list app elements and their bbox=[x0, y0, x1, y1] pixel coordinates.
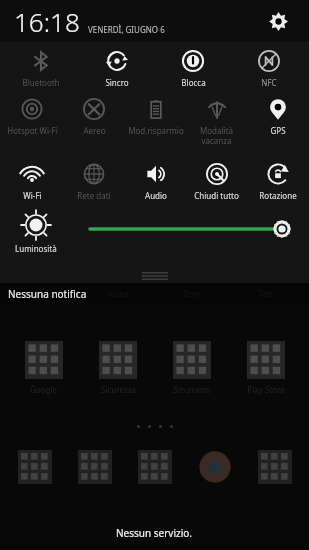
staticText: Chiudi tutto bbox=[194, 190, 239, 201]
button[interactable]: Sicurezza bbox=[81, 341, 155, 395]
button[interactable]: Blocca bbox=[155, 43, 231, 90]
staticText: Sincro bbox=[105, 77, 129, 88]
staticText: Musica bbox=[30, 288, 57, 299]
staticText: Rete dati bbox=[77, 190, 111, 201]
staticText: Rotazione bbox=[259, 190, 297, 201]
button[interactable]: Strumenti bbox=[155, 341, 229, 395]
staticText: Modalità vacanza bbox=[186, 125, 247, 146]
button[interactable]: App 4 bbox=[245, 450, 305, 484]
staticText: Wi-Fi bbox=[23, 190, 42, 201]
button[interactable]: Modalità vacanza bbox=[186, 91, 247, 148]
button[interactable]: Mod.risparmio bbox=[125, 91, 186, 138]
staticText: Play Store bbox=[247, 384, 285, 395]
staticText: Sicurezza bbox=[101, 384, 136, 395]
button[interactable]: App 2 bbox=[125, 450, 185, 484]
button[interactable]: Rete dati bbox=[63, 156, 125, 203]
button[interactable]: Settings bbox=[265, 8, 291, 34]
staticText: 16:18 bbox=[14, 4, 80, 39]
staticText: Video bbox=[107, 288, 129, 299]
button[interactable]: Bluetooth bbox=[2, 43, 79, 90]
staticText: Luminosità bbox=[15, 243, 57, 254]
button[interactable]: Aereo bbox=[63, 91, 125, 138]
button[interactable]: Wi-Fi bbox=[1, 156, 63, 203]
button[interactable]: Brightness slider bbox=[72, 215, 309, 251]
button[interactable]: Google bbox=[6, 341, 81, 395]
button[interactable]: Brightness bbox=[0, 212, 72, 254]
button[interactable]: App 1 bbox=[65, 450, 125, 484]
staticText: Google bbox=[30, 384, 57, 395]
button[interactable]: GPS bbox=[247, 91, 308, 138]
staticText: Strumenti bbox=[173, 384, 211, 395]
staticText: Test bbox=[258, 288, 274, 299]
button[interactable]: App 0 bbox=[4, 450, 65, 484]
button[interactable]: Play Store bbox=[229, 341, 303, 395]
staticText: VENERDÌ, GIUGNO 6 bbox=[88, 24, 165, 35]
staticText: NFC bbox=[261, 77, 277, 88]
staticText: GPS bbox=[270, 125, 286, 136]
staticText: Blocca bbox=[181, 77, 206, 88]
staticText: Bluetooth bbox=[22, 77, 60, 88]
button[interactable]: Audio bbox=[125, 156, 186, 203]
button[interactable]: App 3 bbox=[185, 450, 245, 484]
button[interactable]: NFC bbox=[231, 43, 307, 90]
staticText: Nessun servizio. bbox=[116, 526, 193, 540]
staticText: Nessuna notifica bbox=[8, 287, 87, 301]
button[interactable]: Drag handle bbox=[0, 269, 309, 283]
button[interactable]: Rotazione bbox=[247, 156, 308, 203]
button[interactable]: Sincro bbox=[79, 43, 155, 90]
staticText: Mod.risparmio bbox=[128, 125, 184, 136]
staticText: Temi bbox=[183, 288, 201, 299]
staticText: Hotspot Wi-Fi bbox=[7, 125, 58, 136]
staticText: Audio bbox=[145, 190, 167, 201]
staticText: Aereo bbox=[83, 125, 106, 136]
button[interactable]: Chiudi tutto bbox=[186, 156, 247, 203]
button[interactable]: Hotspot Wi-Fi bbox=[1, 91, 63, 138]
